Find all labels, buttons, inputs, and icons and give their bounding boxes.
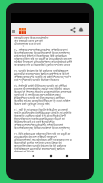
button[interactable]: App logo: [19, 28, 26, 34]
button[interactable]: Back: [30, 153, 36, 159]
button[interactable]: Share: [70, 27, 76, 33]
button[interactable]: Recents: [64, 153, 70, 159]
button[interactable]: Home: [48, 153, 54, 159]
button[interactable]: Notifications: [78, 27, 84, 33]
staticText: एकादशोऽध्यायः विश्वरूपदर्शनयोगः अथ एकादश…: [14, 36, 72, 152]
